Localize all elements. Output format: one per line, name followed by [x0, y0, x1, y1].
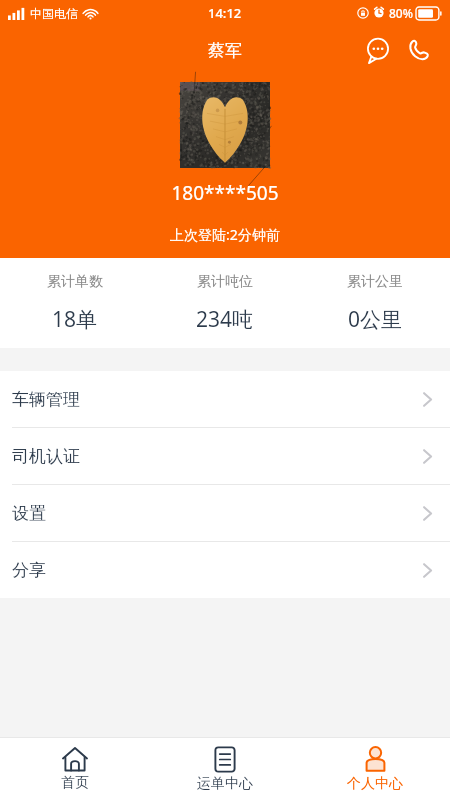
button[interactable]: 累计吨位 — [150, 258, 300, 348]
staticText: 车辆管理 — [12, 389, 80, 410]
staticText: 中国电信 — [30, 6, 78, 21]
staticText: 累计单数 — [47, 273, 103, 291]
button[interactable]: 司机认证 — [0, 428, 450, 484]
button[interactable]: Messages — [358, 30, 398, 70]
button[interactable]: Call — [398, 30, 438, 70]
button[interactable]: 累计公里 — [300, 258, 450, 348]
staticText: 运单中心 — [197, 775, 253, 793]
staticText: 司机认证 — [12, 446, 80, 467]
staticText: 14:12 — [208, 4, 242, 22]
staticText: 上次登陆:2分钟前 — [170, 225, 280, 244]
button[interactable]: 首页 — [0, 738, 150, 800]
staticText: 个人中心 — [347, 775, 403, 793]
button[interactable]: 设置 — [0, 485, 450, 541]
button[interactable]: Profile photo — [180, 82, 270, 168]
staticText: 80% — [389, 5, 413, 21]
staticText: 234吨 — [196, 305, 254, 334]
staticText: 0公里 — [348, 305, 403, 334]
button[interactable]: 个人中心 — [300, 738, 450, 800]
button[interactable]: 分享 — [0, 542, 450, 598]
staticText: 累计吨位 — [197, 273, 253, 291]
staticText: 首页 — [61, 774, 89, 792]
button[interactable]: 累计单数 — [0, 258, 150, 348]
staticText: 设置 — [12, 503, 46, 524]
staticText: 分享 — [12, 560, 46, 581]
button[interactable]: 运单中心 — [150, 738, 300, 800]
button[interactable]: 车辆管理 — [0, 371, 450, 427]
staticText: 累计公里 — [347, 273, 403, 291]
staticText: 18单 — [52, 305, 98, 334]
staticText: 蔡军 — [208, 40, 242, 61]
staticText: 180****505 — [171, 180, 279, 206]
